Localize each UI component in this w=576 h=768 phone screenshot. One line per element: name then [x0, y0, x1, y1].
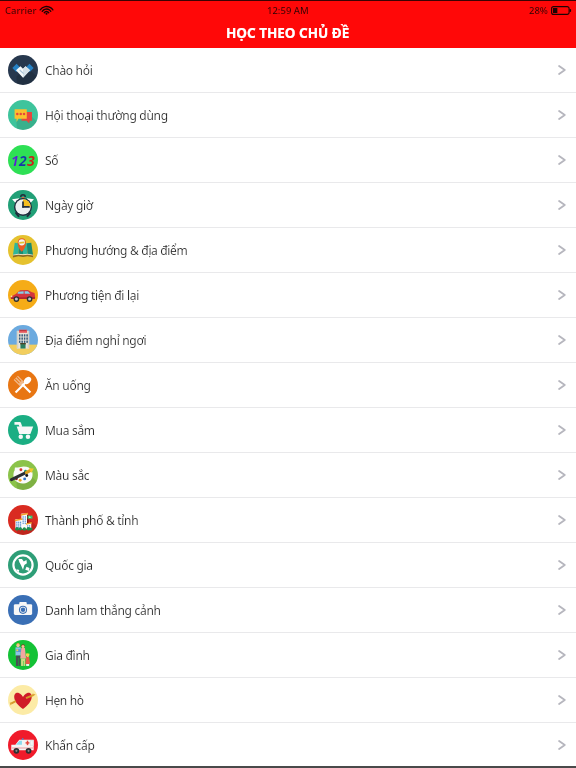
staticText: Phương tiện đi lại	[45, 287, 139, 303]
staticText: Địa điểm nghỉ ngơi	[45, 332, 147, 348]
button[interactable]: Ngày giờ	[0, 183, 576, 228]
button[interactable]: Chào hỏi	[0, 48, 576, 93]
staticText: Ăn uống	[45, 377, 91, 393]
other: Food	[556, 379, 567, 391]
staticText: Ngày giờ	[45, 197, 93, 213]
staticText: Hẹn hò	[45, 692, 84, 708]
button[interactable]: Gia đình	[0, 633, 576, 678]
staticText: Danh lam thắng cảnh	[45, 602, 161, 618]
other: Family	[556, 649, 567, 661]
button[interactable]: Thành phố & tỉnh	[0, 498, 576, 543]
staticText: 2	[19, 151, 27, 170]
staticText: Quốc gia	[45, 557, 93, 573]
staticText: Gia đình	[45, 647, 90, 663]
staticText: Khẩn cấp	[45, 737, 95, 753]
button[interactable]: Phương hướng & địa điểm	[0, 228, 576, 273]
staticText: Thành phố & tỉnh	[45, 512, 139, 528]
button[interactable]: 1	[0, 138, 576, 183]
staticText: 12:59 AM	[267, 4, 309, 17]
staticText: Mua sắm	[45, 422, 95, 438]
button[interactable]: Mua sắm	[0, 408, 576, 453]
staticText: Chào hỏi	[45, 62, 93, 78]
other: Emergency	[556, 739, 567, 751]
other: Accommodation	[556, 334, 567, 346]
other: Dating	[556, 694, 567, 706]
button[interactable]: Hẹn hò	[0, 678, 576, 723]
button[interactable]: Địa điểm nghỉ ngơi	[0, 318, 576, 363]
button[interactable]: Khẩn cấp	[0, 723, 576, 768]
other: Conversation	[556, 109, 567, 121]
other: Directions	[556, 244, 567, 256]
other: Colours	[556, 469, 567, 481]
button[interactable]: Phương tiện đi lại	[0, 273, 576, 318]
staticText: Hội thoại thường dùng	[45, 107, 168, 123]
staticText: Số	[45, 152, 59, 168]
staticText: 3	[27, 151, 35, 170]
button[interactable]: HỌC THEO CHỦ ĐỀ	[0, 20, 576, 48]
other: Numbers	[556, 154, 567, 166]
other: Greetings	[556, 64, 567, 76]
other: Cities	[556, 514, 567, 526]
other: Countries	[556, 559, 567, 571]
button[interactable]: Màu sắc	[0, 453, 576, 498]
button[interactable]: Hội thoại thường dùng	[0, 93, 576, 138]
button[interactable]: Quốc gia	[0, 543, 576, 588]
staticText: Carrier	[5, 4, 37, 17]
button[interactable]: Ăn uống	[0, 363, 576, 408]
staticText: 1	[11, 151, 19, 170]
other: Shopping	[556, 424, 567, 436]
staticText: Màu sắc	[45, 467, 90, 483]
staticText: 28%	[529, 4, 548, 17]
other: Sightseeing	[556, 604, 567, 616]
staticText: HỌC THEO CHỦ ĐỀ	[226, 24, 350, 42]
staticText: Phương hướng & địa điểm	[45, 242, 188, 258]
button[interactable]: Danh lam thắng cảnh	[0, 588, 576, 633]
other: Date and time	[556, 199, 567, 211]
other: Transport	[556, 289, 567, 301]
